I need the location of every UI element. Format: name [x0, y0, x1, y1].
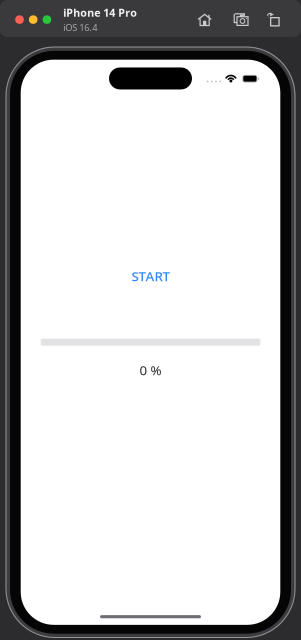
button[interactable]: Home — [198, 13, 212, 26]
staticText: START — [131, 267, 169, 285]
staticText: iOS 16.4 — [63, 21, 97, 34]
button[interactable]: Full screen — [43, 15, 51, 24]
staticText: 0 % — [139, 361, 161, 379]
button[interactable]: Minimise — [29, 15, 37, 24]
button[interactable]: Rotate — [267, 13, 280, 26]
button[interactable]: Screenshot — [233, 13, 249, 26]
button[interactable]: Close — [15, 15, 24, 24]
staticText: iPhone 14 Pro — [63, 6, 137, 20]
button[interactable]: START — [131, 270, 169, 283]
